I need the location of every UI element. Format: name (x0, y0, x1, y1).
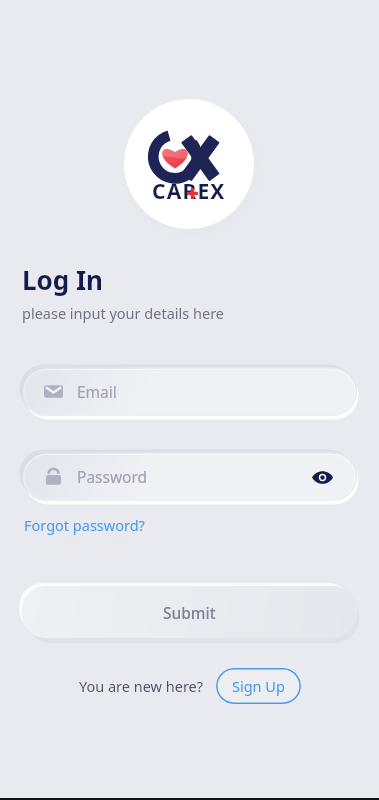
button[interactable]: Forgot password? (22, 512, 147, 538)
staticText: Password (77, 466, 148, 487)
staticText: CAREX (152, 177, 226, 206)
staticText: Email (77, 381, 117, 402)
button[interactable]: Submit (22, 586, 357, 638)
staticText: You are new here? (79, 676, 204, 696)
button[interactable]: Password (22, 452, 357, 501)
staticText: please input your details here (22, 303, 225, 323)
staticText: Sign Up (232, 676, 285, 696)
staticText: Log In (22, 262, 103, 297)
staticText: Submit (163, 602, 216, 623)
staticText: Forgot password? (24, 515, 145, 535)
button[interactable]: Sign Up (216, 668, 301, 704)
button[interactable]: Email (22, 367, 357, 416)
button[interactable]: Show password (307, 462, 337, 492)
